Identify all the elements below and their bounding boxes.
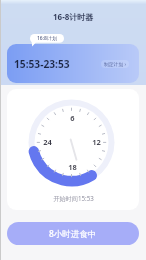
staticText: 18: [68, 162, 77, 172]
staticText: 24: [43, 137, 52, 147]
button[interactable]: 制定计划 ›: [101, 60, 129, 68]
staticText: 15:53-23:53: [14, 57, 70, 71]
staticText: 8小时进食中: [49, 228, 97, 240]
staticText: 开始时间15:53: [53, 194, 94, 202]
button[interactable]: 8小时进食中: [7, 222, 139, 245]
staticText: 制定计划 ›: [104, 61, 126, 68]
staticText: 16-8计时器: [53, 11, 94, 22]
staticText: 16:8计划: [37, 35, 57, 42]
button[interactable]: 15:53-23:53: [7, 44, 139, 83]
staticText: 6: [70, 113, 75, 123]
button[interactable]: 16:8计划: [30, 34, 64, 43]
staticText: 12: [92, 137, 101, 147]
